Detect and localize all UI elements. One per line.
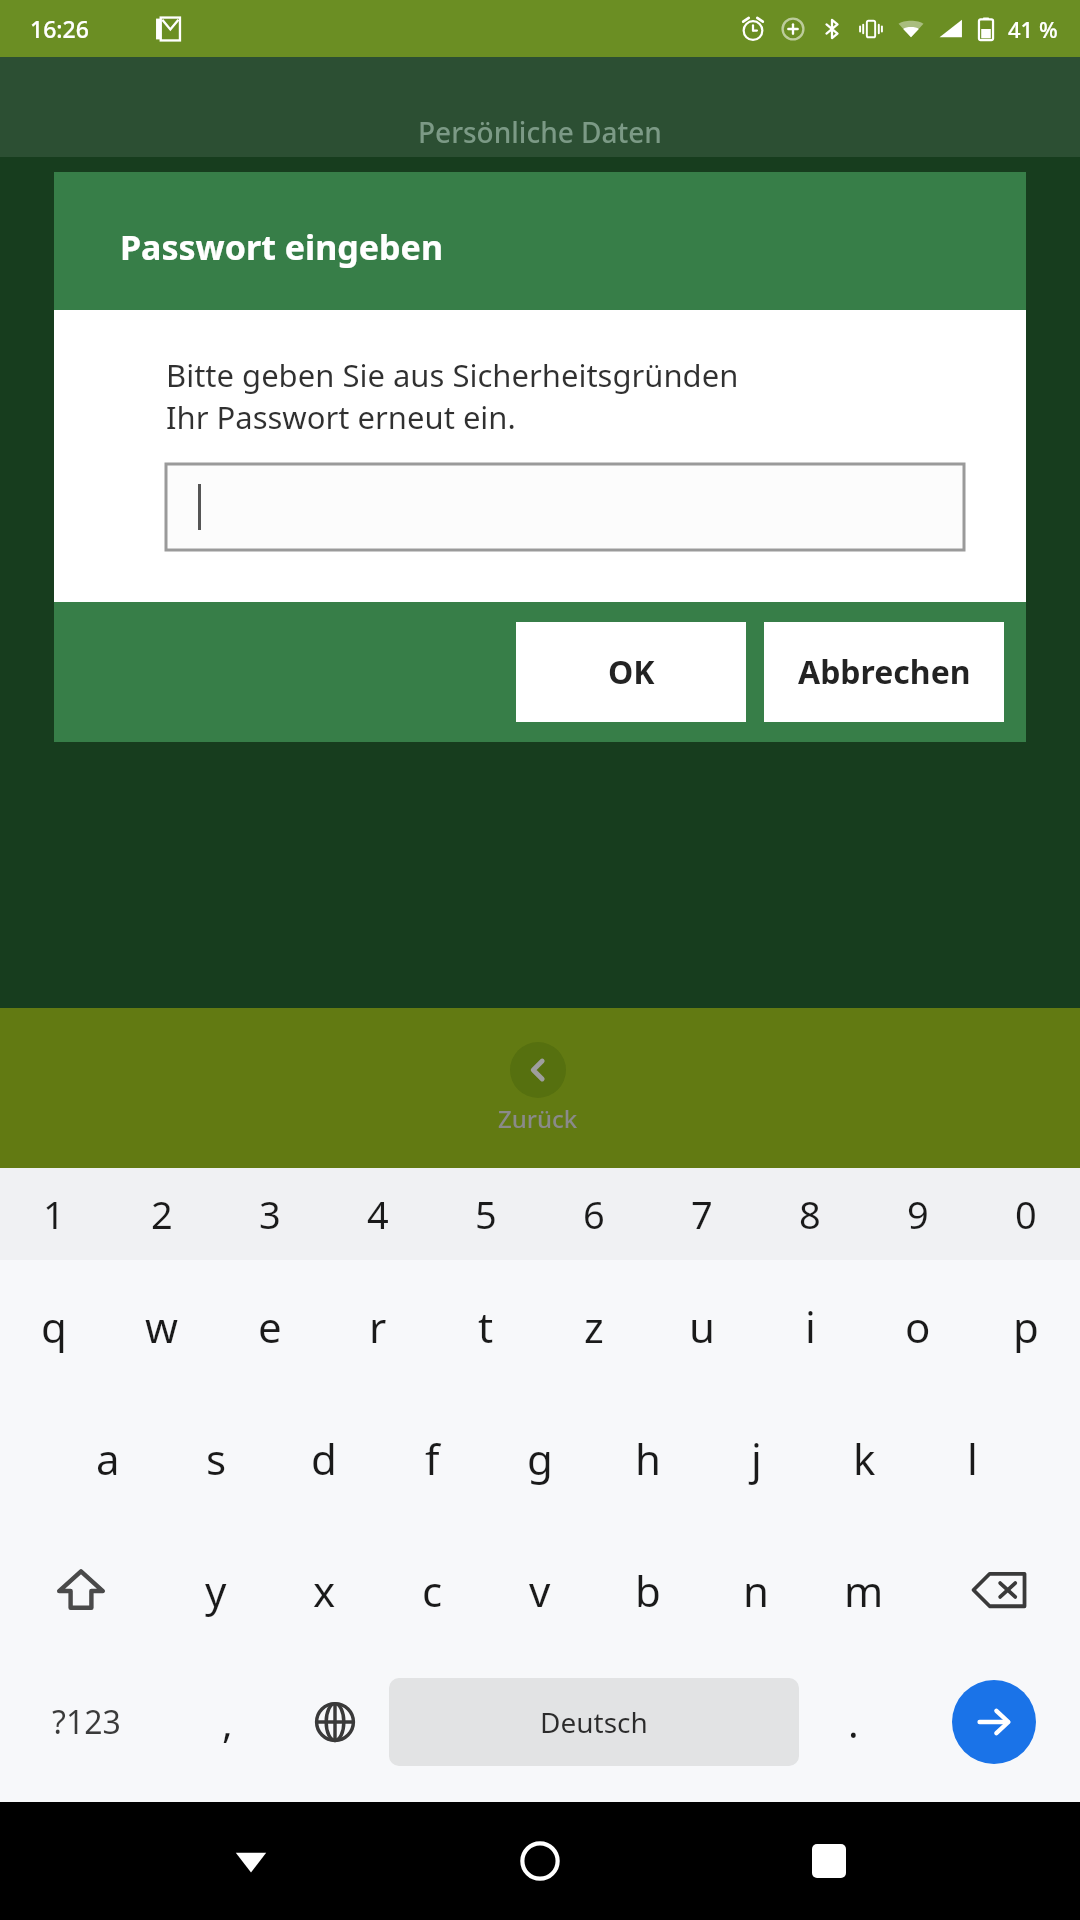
button[interactable] xyxy=(166,464,964,550)
staticText: n xyxy=(743,1562,769,1619)
staticText: a xyxy=(96,1430,120,1487)
staticText: p xyxy=(1013,1298,1039,1355)
staticText: Persönliche Daten xyxy=(418,113,662,151)
button[interactable]: 6 xyxy=(540,1168,648,1260)
button[interactable]: 5 xyxy=(432,1168,540,1260)
button[interactable]: 8 xyxy=(756,1168,864,1260)
button[interactable]: o xyxy=(864,1260,972,1392)
button[interactable]: g xyxy=(486,1392,594,1524)
staticText: i xyxy=(805,1298,816,1355)
staticText: u xyxy=(689,1298,715,1355)
staticText: 1 xyxy=(43,1188,65,1240)
staticText: w xyxy=(145,1298,179,1355)
button[interactable]: q xyxy=(0,1260,108,1392)
staticText: q xyxy=(41,1298,67,1355)
staticText: 7 xyxy=(691,1188,713,1240)
staticText: 3 xyxy=(259,1188,281,1240)
other: Zurück xyxy=(510,1042,566,1098)
button[interactable]: c xyxy=(378,1524,486,1656)
staticText: Abbrechen xyxy=(798,650,971,694)
staticText: 4 xyxy=(367,1188,389,1240)
staticText: s xyxy=(206,1430,227,1487)
staticText: 8 xyxy=(799,1188,821,1240)
staticText: c xyxy=(422,1562,443,1619)
staticText: h xyxy=(635,1430,661,1487)
button[interactable]: . xyxy=(799,1656,907,1788)
staticText: Bitte geben Sie aus Sicherheitsgründen I… xyxy=(166,354,739,438)
button[interactable]: y xyxy=(162,1524,270,1656)
button[interactable]: Umschalt xyxy=(0,1524,162,1656)
button[interactable]: OK xyxy=(516,622,746,722)
button[interactable]: , xyxy=(173,1656,281,1788)
staticText: 9 xyxy=(907,1188,929,1240)
button[interactable]: Übersicht xyxy=(791,1823,867,1899)
staticText: r xyxy=(369,1298,387,1355)
staticText: . xyxy=(848,1695,859,1749)
staticText: 41 % xyxy=(1008,14,1058,44)
button[interactable]: b xyxy=(594,1524,702,1656)
button[interactable]: 0 xyxy=(972,1168,1080,1260)
button[interactable]: Weiter xyxy=(952,1680,1036,1764)
staticText: x xyxy=(313,1562,336,1619)
button[interactable]: Deutsch xyxy=(389,1678,799,1766)
button[interactable]: 4 xyxy=(324,1168,432,1260)
staticText: m xyxy=(844,1562,884,1619)
button[interactable]: j xyxy=(702,1392,810,1524)
staticText: t xyxy=(478,1298,494,1355)
button[interactable]: h xyxy=(594,1392,702,1524)
button[interactable]: d xyxy=(270,1392,378,1524)
button[interactable]: 1 xyxy=(0,1168,108,1260)
button[interactable]: p xyxy=(972,1260,1080,1392)
staticText: g xyxy=(527,1430,553,1487)
button[interactable]: Sprache wechseln xyxy=(281,1656,389,1788)
button[interactable]: t xyxy=(432,1260,540,1392)
button[interactable]: w xyxy=(108,1260,216,1392)
button[interactable]: k xyxy=(810,1392,918,1524)
staticText: Zurück xyxy=(498,1102,578,1135)
button[interactable]: l xyxy=(918,1392,1026,1524)
staticText: d xyxy=(311,1430,337,1487)
staticText: v xyxy=(529,1562,551,1619)
button[interactable]: Abbrechen xyxy=(764,622,1004,722)
staticText: ?123 xyxy=(52,1700,121,1744)
button[interactable]: Zurück xyxy=(213,1823,289,1899)
staticText: 16:26 xyxy=(30,13,89,44)
button[interactable]: i xyxy=(756,1260,864,1392)
button[interactable]: Löschen xyxy=(918,1524,1080,1656)
staticText: 2 xyxy=(151,1188,173,1240)
button[interactable]: 3 xyxy=(216,1168,324,1260)
staticText: e xyxy=(258,1298,282,1355)
staticText: j xyxy=(751,1430,762,1487)
button[interactable]: 9 xyxy=(864,1168,972,1260)
button[interactable]: 2 xyxy=(108,1168,216,1260)
button[interactable]: e xyxy=(216,1260,324,1392)
staticText: l xyxy=(967,1430,978,1487)
staticText: 6 xyxy=(583,1188,605,1240)
staticText: 0 xyxy=(1015,1188,1037,1240)
button[interactable]: f xyxy=(378,1392,486,1524)
button[interactable]: u xyxy=(648,1260,756,1392)
button[interactable]: a xyxy=(54,1392,162,1524)
staticText: Deutsch xyxy=(540,1703,648,1741)
staticText: , xyxy=(222,1695,233,1749)
staticText: o xyxy=(905,1298,931,1355)
button[interactable]: v xyxy=(486,1524,594,1656)
staticText: OK xyxy=(608,650,655,694)
button[interactable]: r xyxy=(324,1260,432,1392)
button[interactable]: m xyxy=(810,1524,918,1656)
staticText: 5 xyxy=(475,1188,497,1240)
button[interactable]: s xyxy=(162,1392,270,1524)
button[interactable]: Startbildschirm xyxy=(502,1823,578,1899)
button[interactable]: z xyxy=(540,1260,648,1392)
button[interactable]: 7 xyxy=(648,1168,756,1260)
staticText: b xyxy=(635,1562,661,1619)
staticText: f xyxy=(425,1430,440,1487)
staticText: z xyxy=(584,1298,604,1355)
staticText: k xyxy=(853,1430,876,1487)
staticText: Passwort eingeben xyxy=(120,224,443,270)
button[interactable]: Zurück xyxy=(0,1008,1080,1168)
staticText: y xyxy=(205,1562,227,1619)
button[interactable]: ?123 xyxy=(0,1656,173,1788)
button[interactable]: x xyxy=(270,1524,378,1656)
button[interactable]: n xyxy=(702,1524,810,1656)
